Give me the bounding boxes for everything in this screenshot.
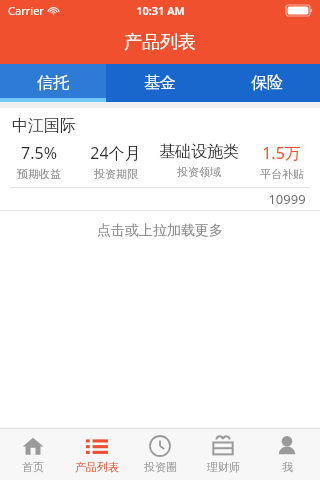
staticText: 10:31 AM	[136, 3, 185, 18]
staticText: 基础设施类	[159, 142, 239, 162]
button[interactable]: 基金	[106, 64, 213, 102]
staticText: 预期收益	[17, 167, 61, 181]
button[interactable]: 产品列表	[67, 429, 127, 480]
staticText: 产品列表	[75, 460, 119, 474]
staticText: 平台补贴	[260, 167, 304, 181]
staticText: 产品列表	[124, 31, 196, 54]
staticText: 7.5%	[21, 142, 57, 164]
staticText: 点击或上拉加载更多	[97, 222, 223, 240]
staticText: Carrier	[8, 3, 44, 18]
button[interactable]: 保险	[213, 64, 320, 102]
staticText: 保险	[251, 73, 283, 93]
staticText: 投资领域	[177, 165, 221, 179]
button[interactable]: 理财师	[193, 429, 253, 480]
button[interactable]: 中江国际	[0, 108, 320, 211]
button[interactable]: 首页	[3, 429, 63, 480]
staticText: 投资圈	[144, 460, 177, 474]
button[interactable]: 点击或上拉加载更多	[0, 211, 320, 251]
staticText: 10999	[268, 190, 306, 208]
staticText: 中江国际	[12, 116, 76, 136]
button[interactable]: 我	[257, 429, 317, 480]
staticText: 基金	[144, 73, 176, 93]
staticText: 首页	[22, 460, 44, 474]
staticText: 信托	[37, 73, 69, 93]
staticText: 理财师	[207, 460, 240, 474]
staticText: 投资期限	[94, 167, 138, 181]
button[interactable]: 投资圈	[130, 429, 190, 480]
staticText: 我	[282, 460, 293, 474]
staticText: 1.5万	[262, 142, 301, 164]
staticText: 24个月	[90, 142, 141, 164]
button[interactable]: 信托	[0, 64, 106, 102]
